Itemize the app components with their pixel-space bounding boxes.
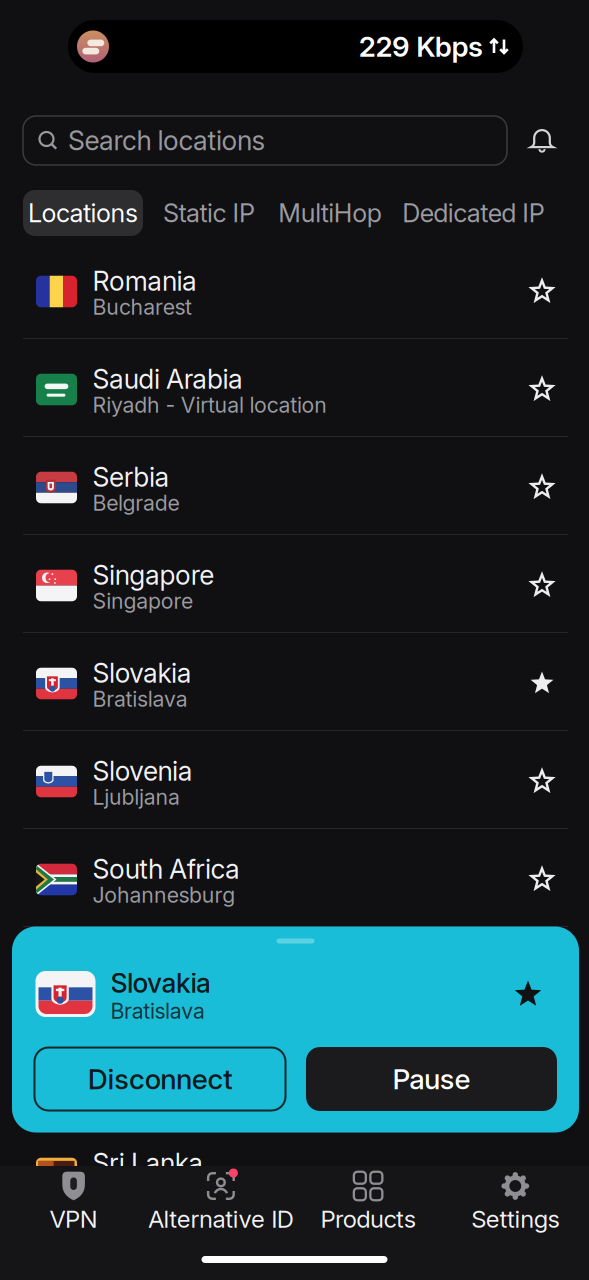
- staticText: Products: [320, 1205, 416, 1233]
- staticText: Johannesburg: [92, 882, 235, 908]
- button[interactable]: South Africa: [0, 828, 589, 926]
- staticText: Pause: [393, 1062, 470, 1095]
- staticText: VPN: [49, 1205, 98, 1233]
- button[interactable]: Singapore: [0, 534, 589, 632]
- staticText: Singapore: [92, 559, 214, 591]
- button[interactable]: Settings: [442, 1166, 589, 1250]
- button[interactable]: Pause: [306, 1047, 557, 1111]
- staticText: Disconnect: [88, 1062, 232, 1095]
- button[interactable]: Dedicated IP: [402, 198, 545, 228]
- staticText: Romania: [92, 265, 197, 297]
- staticText: Saudi Arabia: [92, 363, 243, 395]
- button[interactable]: Products: [295, 1166, 442, 1250]
- staticText: Search locations: [68, 125, 265, 156]
- button[interactable]: Slovenia: [0, 730, 589, 828]
- staticText: Alternative ID: [148, 1205, 294, 1233]
- button[interactable]: VPN: [0, 1166, 147, 1250]
- button[interactable]: Favorite South Africa: [528, 865, 556, 893]
- staticText: Slovenia: [92, 755, 193, 787]
- button[interactable]: Favorite Serbia: [528, 473, 556, 501]
- button[interactable]: Slovakia: [12, 926, 579, 1132]
- staticText: Sri Lanka: [92, 1147, 203, 1179]
- button[interactable]: Favorite Saudi Arabia: [528, 375, 556, 403]
- staticText: Belgrade: [92, 490, 179, 516]
- button[interactable]: MultiHop: [278, 198, 382, 228]
- staticText: Singapore: [92, 588, 193, 614]
- staticText: Settings: [471, 1205, 559, 1233]
- staticText: Locations: [28, 198, 138, 228]
- staticText: Slovakia: [110, 967, 211, 999]
- button[interactable]: Favorite Slovenia: [528, 767, 556, 795]
- button[interactable]: Slovakia: [0, 632, 589, 730]
- button[interactable]: Favorite Slovakia: [514, 980, 542, 1008]
- button[interactable]: Search locations: [23, 116, 507, 165]
- button[interactable]: Locations: [23, 190, 143, 236]
- button[interactable]: Favorite Slovakia: [528, 669, 556, 697]
- staticText: Serbia: [92, 461, 169, 493]
- staticText: Static IP: [163, 198, 255, 228]
- button[interactable]: Romania: [0, 240, 589, 338]
- button[interactable]: Saudi Arabia: [0, 338, 589, 436]
- button[interactable]: Alternative ID: [147, 1166, 294, 1250]
- staticText: Ljubljana: [92, 784, 180, 810]
- staticText: MultiHop: [278, 198, 382, 228]
- staticText: South Africa: [92, 853, 240, 885]
- button[interactable]: Favorite Singapore: [528, 571, 556, 599]
- staticText: Riyadh - Virtual location: [92, 392, 327, 418]
- staticText: 229 Kbps: [359, 30, 483, 63]
- staticText: Bratislava: [92, 686, 188, 712]
- button[interactable]: Disconnect: [34, 1047, 285, 1110]
- button[interactable]: Sri Lanka: [0, 1122, 589, 1220]
- staticText: Bucharest: [92, 294, 192, 320]
- staticText: Bratislava: [110, 998, 205, 1024]
- button[interactable]: Static IP: [163, 198, 255, 228]
- staticText: Slovakia: [92, 657, 192, 689]
- button[interactable]: Serbia: [0, 436, 589, 534]
- button[interactable]: Favorite Romania: [528, 277, 556, 305]
- button[interactable]: Notifications: [529, 127, 555, 153]
- staticText: Dedicated IP: [402, 198, 545, 228]
